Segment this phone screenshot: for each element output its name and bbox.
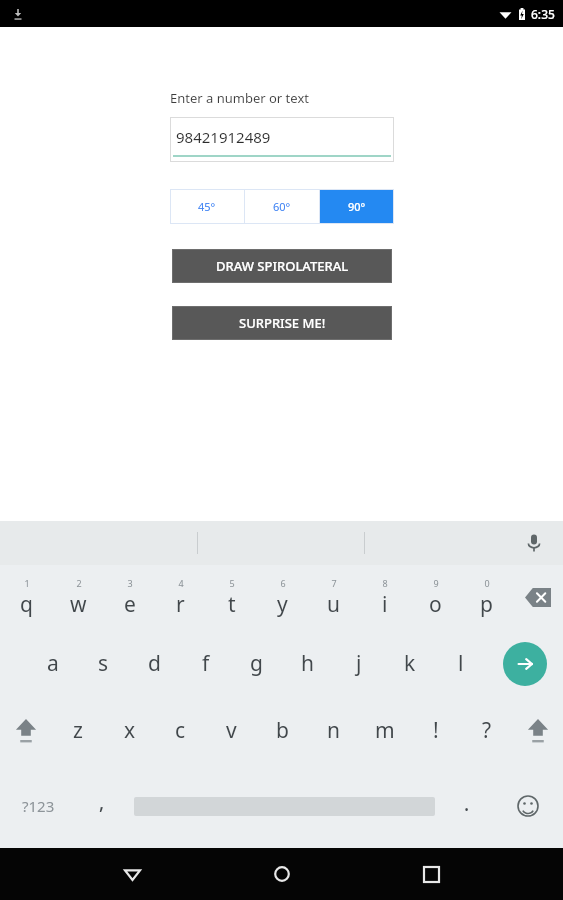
staticText: z [73, 716, 83, 745]
staticText: 1 [24, 577, 30, 589]
staticText: b [276, 716, 289, 745]
button[interactable]: SURPRISE ME! [172, 306, 392, 340]
button[interactable]: 5 [206, 565, 257, 630]
staticText: r [176, 590, 185, 619]
button[interactable]: Recents [409, 852, 453, 896]
button[interactable]: l [435, 630, 486, 697]
button[interactable]: Shift [0, 697, 52, 764]
staticText: SURPRISE ME! [239, 314, 326, 332]
staticText: e [124, 590, 136, 619]
staticText: u [327, 590, 340, 619]
staticText: l [458, 649, 464, 678]
staticText: 60° [273, 199, 291, 214]
button[interactable]: Backspace [512, 565, 563, 630]
staticText: ? [482, 716, 492, 745]
button[interactable]: DRAW SPIROLATERAL [172, 249, 392, 283]
button[interactable]: m [359, 697, 410, 764]
staticText: k [404, 649, 416, 678]
staticText: x [124, 716, 136, 745]
button[interactable]: z [52, 697, 104, 764]
staticText: v [226, 716, 237, 745]
button[interactable]: Voice input [519, 528, 549, 558]
button[interactable]: Enter [486, 630, 563, 697]
button[interactable]: ?123 [0, 764, 76, 848]
button[interactable]: 2 [52, 565, 104, 630]
staticText: 2 [76, 577, 82, 589]
staticText: q [20, 590, 33, 619]
button[interactable]: 4 [155, 565, 206, 630]
button[interactable]: 3 [104, 565, 155, 630]
button[interactable]: d [129, 630, 180, 697]
button[interactable]: 60° [245, 189, 319, 224]
button[interactable]: 1 [0, 565, 52, 630]
staticText: 5 [229, 577, 235, 589]
button[interactable]: b [257, 697, 308, 764]
staticText: Enter a number or text [170, 89, 309, 107]
staticText: 7 [331, 577, 337, 589]
staticText: ! [433, 716, 439, 745]
staticText: 0 [484, 577, 490, 589]
staticText: p [480, 590, 493, 619]
button[interactable]: Space [127, 764, 441, 848]
button[interactable]: 90° [320, 189, 394, 224]
button[interactable]: v [206, 697, 257, 764]
button[interactable]: Shift [512, 697, 563, 764]
button[interactable]: Emoji [492, 764, 563, 848]
staticText: 8 [382, 577, 388, 589]
button[interactable]: 9 [410, 565, 461, 630]
staticText: DRAW SPIROLATERAL [216, 257, 349, 275]
button[interactable]: a [27, 630, 78, 697]
staticText: n [327, 716, 340, 745]
staticText: i [382, 590, 388, 619]
staticText: y [277, 590, 288, 619]
button[interactable]: , [76, 764, 127, 848]
staticText: g [250, 649, 263, 678]
staticText: 6:35 [531, 6, 555, 22]
button[interactable]: h [282, 630, 333, 697]
button[interactable]: ? [461, 697, 512, 764]
staticText: c [175, 716, 186, 745]
button[interactable]: j [333, 630, 384, 697]
button[interactable]: f [180, 630, 231, 697]
button[interactable]: s [78, 630, 129, 697]
staticText: , [99, 789, 105, 815]
button[interactable]: g [231, 630, 282, 697]
button[interactable]: k [384, 630, 435, 697]
button[interactable]: 6 [257, 565, 308, 630]
button[interactable]: Home [260, 852, 304, 896]
staticText: s [98, 649, 109, 678]
button[interactable]: 0 [461, 565, 512, 630]
button[interactable]: x [104, 697, 155, 764]
button[interactable]: 7 [308, 565, 359, 630]
button[interactable]: 98421912489 [170, 117, 394, 162]
button[interactable]: ! [410, 697, 461, 764]
button[interactable]: n [308, 697, 359, 764]
staticText: d [148, 649, 161, 678]
staticText: . [464, 791, 470, 817]
button[interactable]: . [441, 764, 492, 848]
staticText: 45° [198, 199, 216, 214]
staticText: o [429, 590, 442, 619]
staticText: w [70, 590, 87, 619]
staticText: 3 [127, 577, 133, 589]
staticText: 9 [433, 577, 439, 589]
button[interactable]: Back [110, 852, 154, 896]
button[interactable]: 8 [359, 565, 410, 630]
staticText: m [375, 716, 395, 745]
staticText: 98421912489 [176, 127, 271, 147]
staticText: 90° [348, 199, 366, 214]
staticText: a [47, 649, 59, 678]
button[interactable]: 45° [170, 189, 244, 224]
staticText: 4 [178, 577, 184, 589]
button[interactable]: c [155, 697, 206, 764]
staticText: f [202, 649, 210, 678]
staticText: j [356, 649, 362, 678]
staticText: t [228, 590, 236, 619]
staticText: ?123 [22, 796, 55, 816]
staticText: 6 [280, 577, 286, 589]
staticText: h [301, 649, 314, 678]
